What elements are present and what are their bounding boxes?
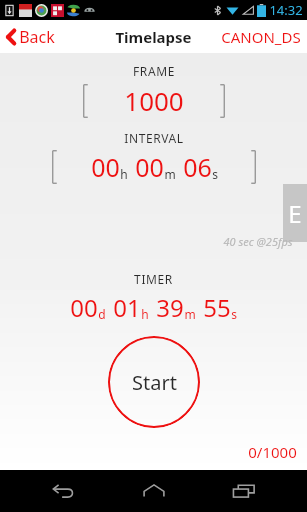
staticText: Timelapse: [115, 27, 192, 47]
staticText: 00: [135, 150, 164, 184]
staticText: E: [288, 197, 302, 230]
button[interactable]: Back: [0, 22, 63, 52]
staticText: 55: [203, 291, 231, 324]
staticText: h: [141, 306, 149, 322]
button[interactable]: Back: [36, 470, 90, 512]
button[interactable]: Home: [127, 470, 181, 512]
staticText: Start: [132, 369, 177, 396]
button[interactable]: Expand panel: [283, 184, 307, 242]
staticText: m: [164, 166, 176, 182]
staticText: 39: [156, 291, 184, 324]
staticText: FRAME: [133, 63, 175, 79]
staticText: 01: [113, 291, 141, 324]
staticText: 00: [91, 150, 120, 184]
button[interactable]: Start: [108, 336, 200, 428]
button[interactable]: Recent apps: [217, 470, 271, 512]
staticText: 00: [70, 291, 98, 324]
staticText: 40 sec @25fps: [223, 234, 293, 249]
staticText: m: [184, 306, 196, 322]
staticText: Back: [19, 26, 55, 48]
staticText: s: [231, 306, 237, 322]
button[interactable]: CANON_DS: [215, 23, 307, 51]
staticText: INTERVAL: [124, 130, 184, 146]
staticText: 06: [183, 150, 212, 184]
staticText: 1000: [124, 83, 184, 118]
staticText: 14:32: [269, 1, 303, 19]
staticText: 0/1000: [248, 442, 297, 462]
staticText: h: [120, 166, 128, 182]
staticText: d: [98, 306, 106, 322]
staticText: s: [212, 166, 218, 182]
staticText: TIMER: [134, 271, 173, 287]
staticText: CANON_DS: [221, 27, 301, 47]
